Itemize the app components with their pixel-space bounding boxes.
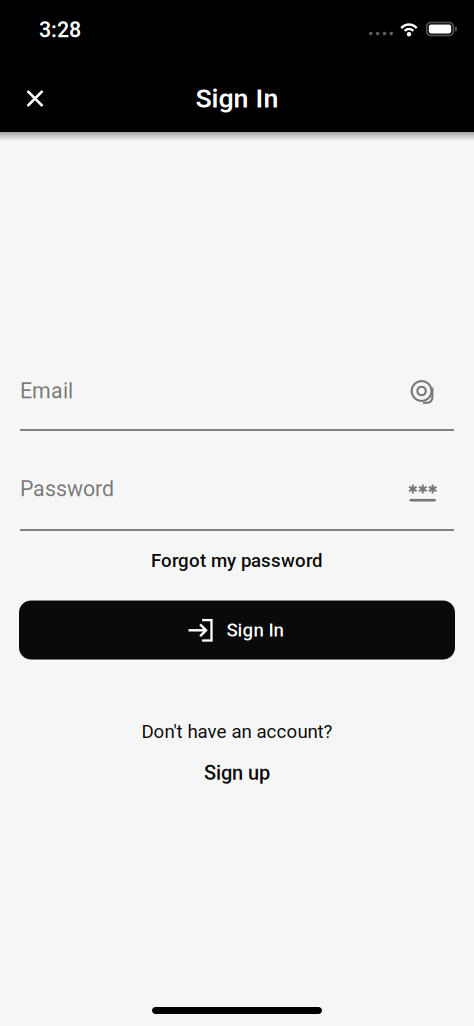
button[interactable]: Forgot my password	[151, 547, 323, 573]
button[interactable]: Close	[13, 76, 57, 120]
button[interactable]: Password	[0, 474, 474, 531]
staticText: Password	[20, 477, 114, 501]
button[interactable]: Sign up	[204, 759, 270, 786]
button[interactable]: Sign In	[19, 600, 455, 659]
staticText: Forgot my password	[151, 550, 323, 571]
button[interactable]: Email	[0, 376, 474, 431]
staticText: Sign In	[195, 83, 278, 114]
staticText: Don't have an account?	[141, 721, 332, 742]
staticText: Sign up	[204, 762, 270, 784]
staticText: Email	[20, 379, 73, 403]
staticText: 3:28	[39, 18, 81, 42]
staticText: Sign In	[226, 619, 283, 641]
